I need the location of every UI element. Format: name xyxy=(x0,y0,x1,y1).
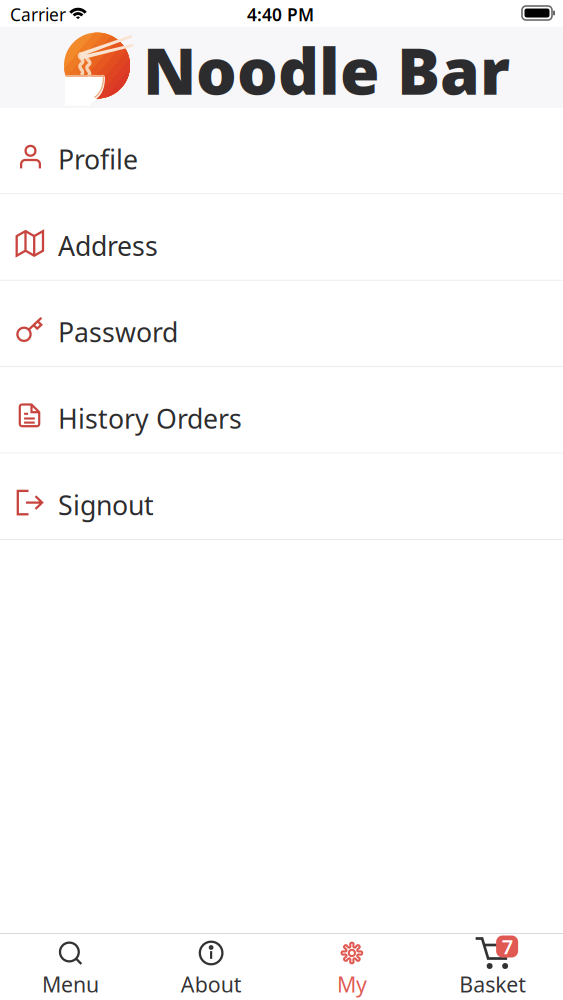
staticText: Profile xyxy=(58,141,138,177)
button[interactable]: Signout xyxy=(0,454,563,540)
staticText: Password xyxy=(58,314,178,350)
button[interactable]: Address xyxy=(0,194,563,281)
staticText: 4:40 PM xyxy=(247,3,314,26)
staticText: Address xyxy=(58,228,158,263)
button[interactable]: Password xyxy=(0,281,563,367)
button[interactable]: Menu xyxy=(0,934,141,1000)
button[interactable]: Profile xyxy=(0,108,563,194)
staticText: Menu xyxy=(42,970,99,998)
staticText: History Orders xyxy=(58,401,242,436)
button[interactable]: About xyxy=(141,934,282,1000)
staticText: Carrier xyxy=(10,3,66,26)
button[interactable]: History Orders xyxy=(0,367,563,454)
staticText: My xyxy=(337,970,367,998)
staticText: Signout xyxy=(58,487,154,522)
button[interactable]: 7 xyxy=(422,934,563,1000)
button[interactable]: My xyxy=(281,934,422,1000)
staticText: Noodle Bar xyxy=(143,27,510,112)
staticText: About xyxy=(181,970,242,998)
staticText: Basket xyxy=(459,970,526,998)
staticText: 7 xyxy=(502,933,513,960)
